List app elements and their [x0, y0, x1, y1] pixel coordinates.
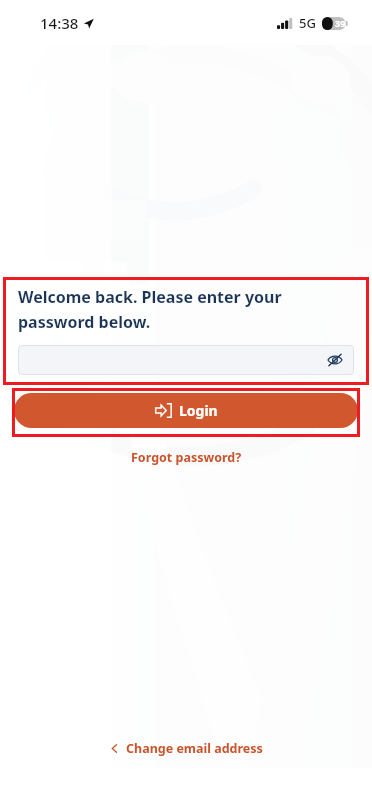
staticText: Login [179, 401, 218, 420]
staticText: password below. [18, 311, 151, 333]
staticText: 39 [335, 17, 346, 29]
button[interactable]: Forgot password? [0, 446, 372, 468]
staticText: Forgot password? [131, 449, 242, 466]
button[interactable]: Show password [324, 349, 346, 371]
button[interactable]: Show password [18, 345, 354, 375]
staticText: Welcome back. Please enter your [18, 286, 282, 308]
staticText: 5G [299, 14, 316, 32]
button[interactable]: Change email address [0, 736, 372, 760]
staticText: 14:38 [40, 13, 79, 33]
staticText: Change email address [126, 740, 263, 757]
button[interactable]: Login [14, 393, 358, 428]
